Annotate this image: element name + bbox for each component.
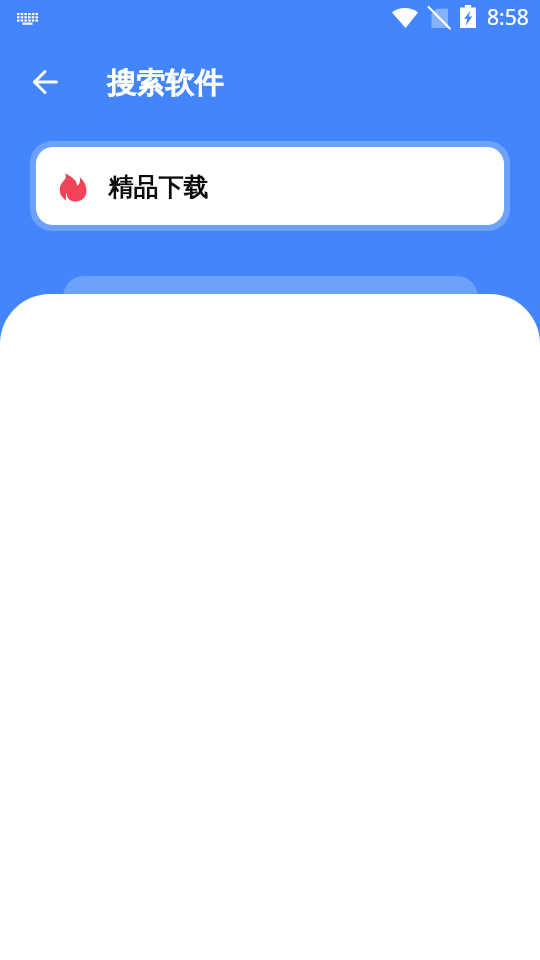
button[interactable]: Next suggestion: [63, 276, 478, 320]
staticText: 搜索软件: [107, 65, 223, 102]
staticText: 精品下载: [108, 172, 208, 203]
other: Keyboard: [17, 13, 38, 25]
button[interactable]: 精品下载: [36, 147, 504, 225]
staticText: 8:58: [487, 3, 529, 32]
button[interactable]: Back: [21, 58, 69, 106]
